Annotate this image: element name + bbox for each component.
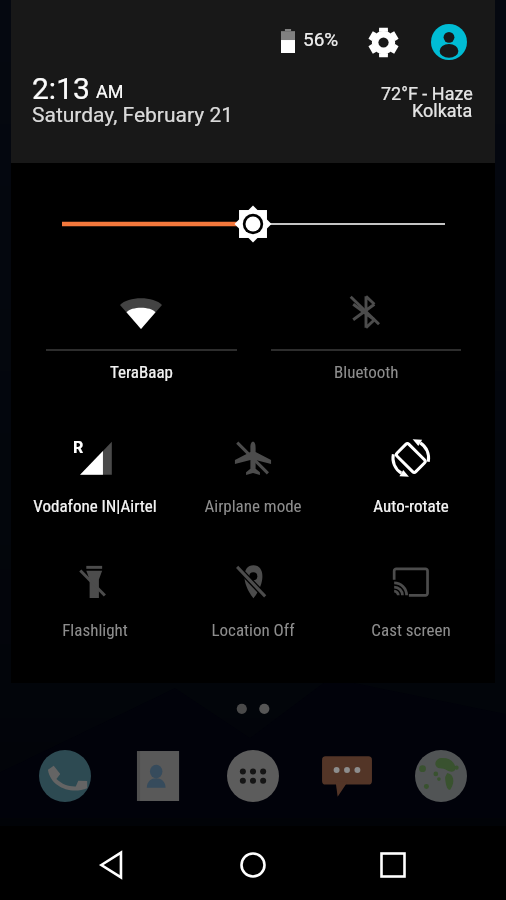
button[interactable]: Cast screen	[332, 551, 490, 631]
button[interactable]: Brightness	[11, 185, 495, 265]
button[interactable]: All apps	[227, 750, 279, 802]
staticText: Bluetooth	[334, 362, 399, 382]
button[interactable]: Browser	[415, 750, 467, 802]
staticText: Saturday, February 21	[32, 103, 234, 128]
button[interactable]: Messaging	[321, 750, 373, 802]
staticText: 2:13	[32, 71, 90, 106]
button[interactable]: TeraBaap	[11, 275, 253, 395]
staticText: AM	[96, 81, 124, 102]
staticText: 72°F - Haze	[381, 83, 473, 104]
staticText: Airplane mode	[204, 496, 302, 516]
staticText: Flashlight	[62, 620, 128, 640]
button[interactable]: Phone	[39, 750, 91, 802]
button[interactable]: Bluetooth	[253, 275, 495, 395]
button[interactable]: Recent apps	[365, 837, 421, 893]
button[interactable]: Location Off	[174, 551, 332, 631]
staticText: R	[73, 438, 84, 457]
staticText: TeraBaap	[110, 362, 173, 382]
button[interactable]: R	[16, 428, 174, 508]
staticText: Location Off	[211, 620, 295, 640]
staticText: Auto-rotate	[373, 496, 449, 516]
staticText: Cast screen	[371, 620, 451, 640]
staticText: Kolkata	[412, 100, 473, 121]
button[interactable]: Contacts	[132, 750, 184, 802]
button[interactable]: User profile	[430, 23, 468, 61]
button[interactable]: Flashlight	[16, 551, 174, 631]
button[interactable]: Airplane mode	[174, 428, 332, 508]
staticText: 56%	[303, 28, 339, 50]
button[interactable]: Settings	[364, 23, 402, 61]
button[interactable]: Home	[225, 837, 281, 893]
button[interactable]: Back	[84, 837, 140, 893]
staticText: Vodafone IN|Airtel	[33, 496, 157, 516]
button[interactable]: Auto-rotate	[332, 428, 490, 508]
